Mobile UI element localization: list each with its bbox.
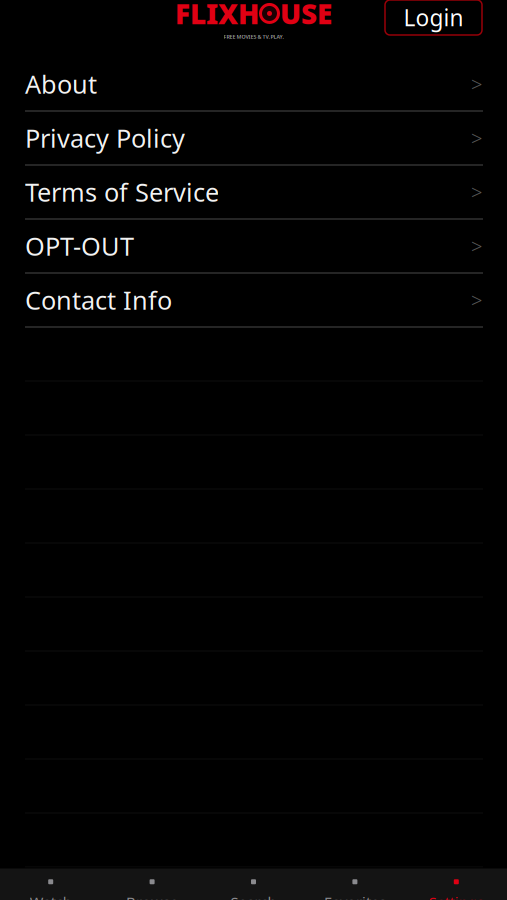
staticText: Favorites [324,892,386,900]
staticText: > [471,287,482,313]
staticText: FLIXH [175,0,259,32]
staticText: > [471,125,482,151]
button[interactable]: Settings [406,868,507,900]
staticText: Login [403,2,463,32]
button[interactable]: Favorites [304,868,406,900]
staticText: Watch [30,892,72,900]
staticText: About [25,67,97,101]
staticText: Browse [126,892,178,900]
staticText: Settings [429,892,484,900]
staticText: Privacy Policy [25,121,185,155]
button[interactable]: Browse [101,868,203,900]
button[interactable]: Privacy Policy [0,111,507,165]
staticText: > [471,233,482,259]
button[interactable]: Watch [0,868,101,900]
staticText: OPT-OUT [25,229,134,263]
staticText: > [471,71,482,97]
button[interactable]: About [0,57,507,111]
button[interactable]: Search [203,868,304,900]
button[interactable]: Contact Info [0,273,507,327]
button[interactable]: OPT-OUT [0,219,507,273]
staticText: Search [230,892,276,900]
staticText: > [471,179,482,205]
staticText: USE [280,0,332,32]
staticText: FREE MOVIES & TV. PLAY. [223,33,283,40]
staticText: Contact Info [25,283,172,317]
button[interactable]: Terms of Service [0,165,507,219]
staticText: Terms of Service [25,175,219,209]
button[interactable]: Login [385,0,482,35]
